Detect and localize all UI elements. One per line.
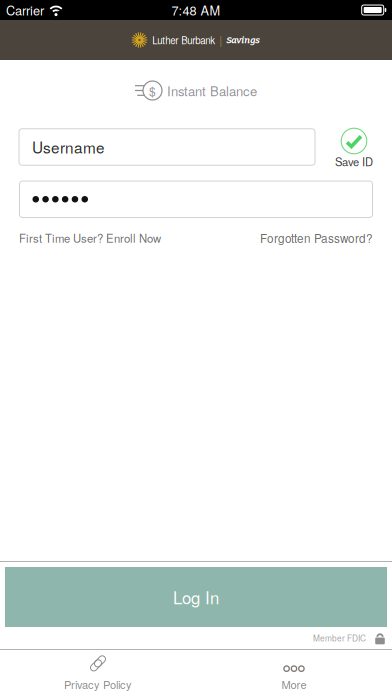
- button[interactable]: Log In: [5, 567, 387, 627]
- button[interactable]: $: [135, 76, 257, 104]
- staticText: Privacy Policy: [64, 676, 132, 692]
- staticText: Instant Balance: [167, 81, 257, 100]
- button[interactable]: First Time User? Enroll Now: [19, 230, 161, 246]
- staticText: Forgotten Password?: [260, 229, 373, 246]
- staticText: Save ID: [335, 153, 373, 169]
- button[interactable]: Privacy Policy: [0, 650, 196, 696]
- staticText: $: [149, 82, 156, 99]
- staticText: 7:48 AM: [171, 1, 220, 19]
- staticText: Luther Burbank: [152, 33, 215, 47]
- staticText: Log In: [173, 585, 219, 609]
- staticText: |: [219, 32, 222, 48]
- button[interactable]: More: [196, 650, 392, 696]
- button[interactable]: Save ID: [327, 126, 381, 167]
- staticText: More: [281, 676, 306, 692]
- button[interactable]: Forgotten Password?: [260, 229, 373, 246]
- staticText: Member FDIC: [313, 632, 366, 644]
- staticText: First Time User? Enroll Now: [19, 230, 161, 246]
- staticText: Username: [32, 136, 105, 158]
- staticText: Carrier: [6, 1, 44, 19]
- staticText: Savings: [226, 34, 260, 46]
